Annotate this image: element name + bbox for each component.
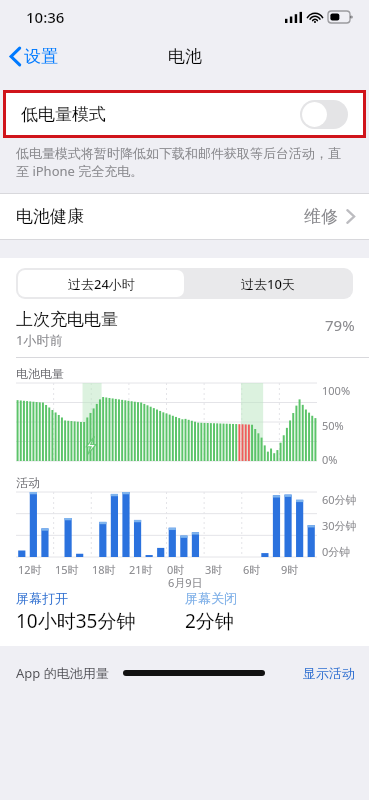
staticText: 18时 [92,562,116,577]
staticText: 12时 [18,562,42,577]
button[interactable]: 设置 [0,42,68,71]
staticText: 过去24小时 [68,275,135,293]
staticText: 过去10天 [241,275,295,293]
staticText: 设置 [24,46,58,67]
staticText: 15时 [55,562,79,577]
staticText: 显示活动 [303,665,355,681]
staticText: 6时 [243,562,261,577]
staticText: 0时 [167,562,185,577]
staticText: 低电量模式将暂时降低如下载和邮件获取等后台活动，直 至 iPhone 完全充电。 [16,145,341,180]
staticText: 2分钟 [185,608,234,634]
staticText: 9时 [281,562,299,577]
staticText: 电池电量 [16,366,64,381]
staticText: 30分钟 [322,518,357,533]
button[interactable]: 电池健康 [0,194,369,239]
staticText: 100% [322,383,351,398]
staticText: 活动 [16,475,40,490]
staticText: 79% [325,315,355,335]
staticText: 维修 [304,206,338,227]
staticText: 3时 [205,562,223,577]
staticText: 60分钟 [322,492,357,507]
staticText: App 的电池用量 [16,664,109,682]
staticText: 电池 [168,46,202,67]
staticText: 屏幕打开 [16,590,68,606]
staticText: 6月9日 [168,575,203,590]
button[interactable]: 过去24小时 [18,270,184,297]
button[interactable]: 过去10天 [184,270,351,297]
staticText: 21时 [129,562,153,577]
staticText: 0分钟 [322,544,351,559]
staticText: 电池健康 [16,206,304,227]
staticText: 屏幕关闭 [185,590,237,606]
button[interactable]: 显示活动 [303,665,355,681]
staticText: 10:36 [26,7,65,27]
staticText: 低电量模式 [21,104,300,125]
button[interactable]: 低电量模式 [6,93,363,135]
staticText: 1小时前 [16,331,63,349]
staticText: 50% [322,418,344,433]
staticText: 10小时35分钟 [16,608,136,634]
other: Low Power Mode toggle [300,100,348,129]
staticText: 上次充电电量 [16,309,118,330]
staticText: 0% [322,452,338,467]
